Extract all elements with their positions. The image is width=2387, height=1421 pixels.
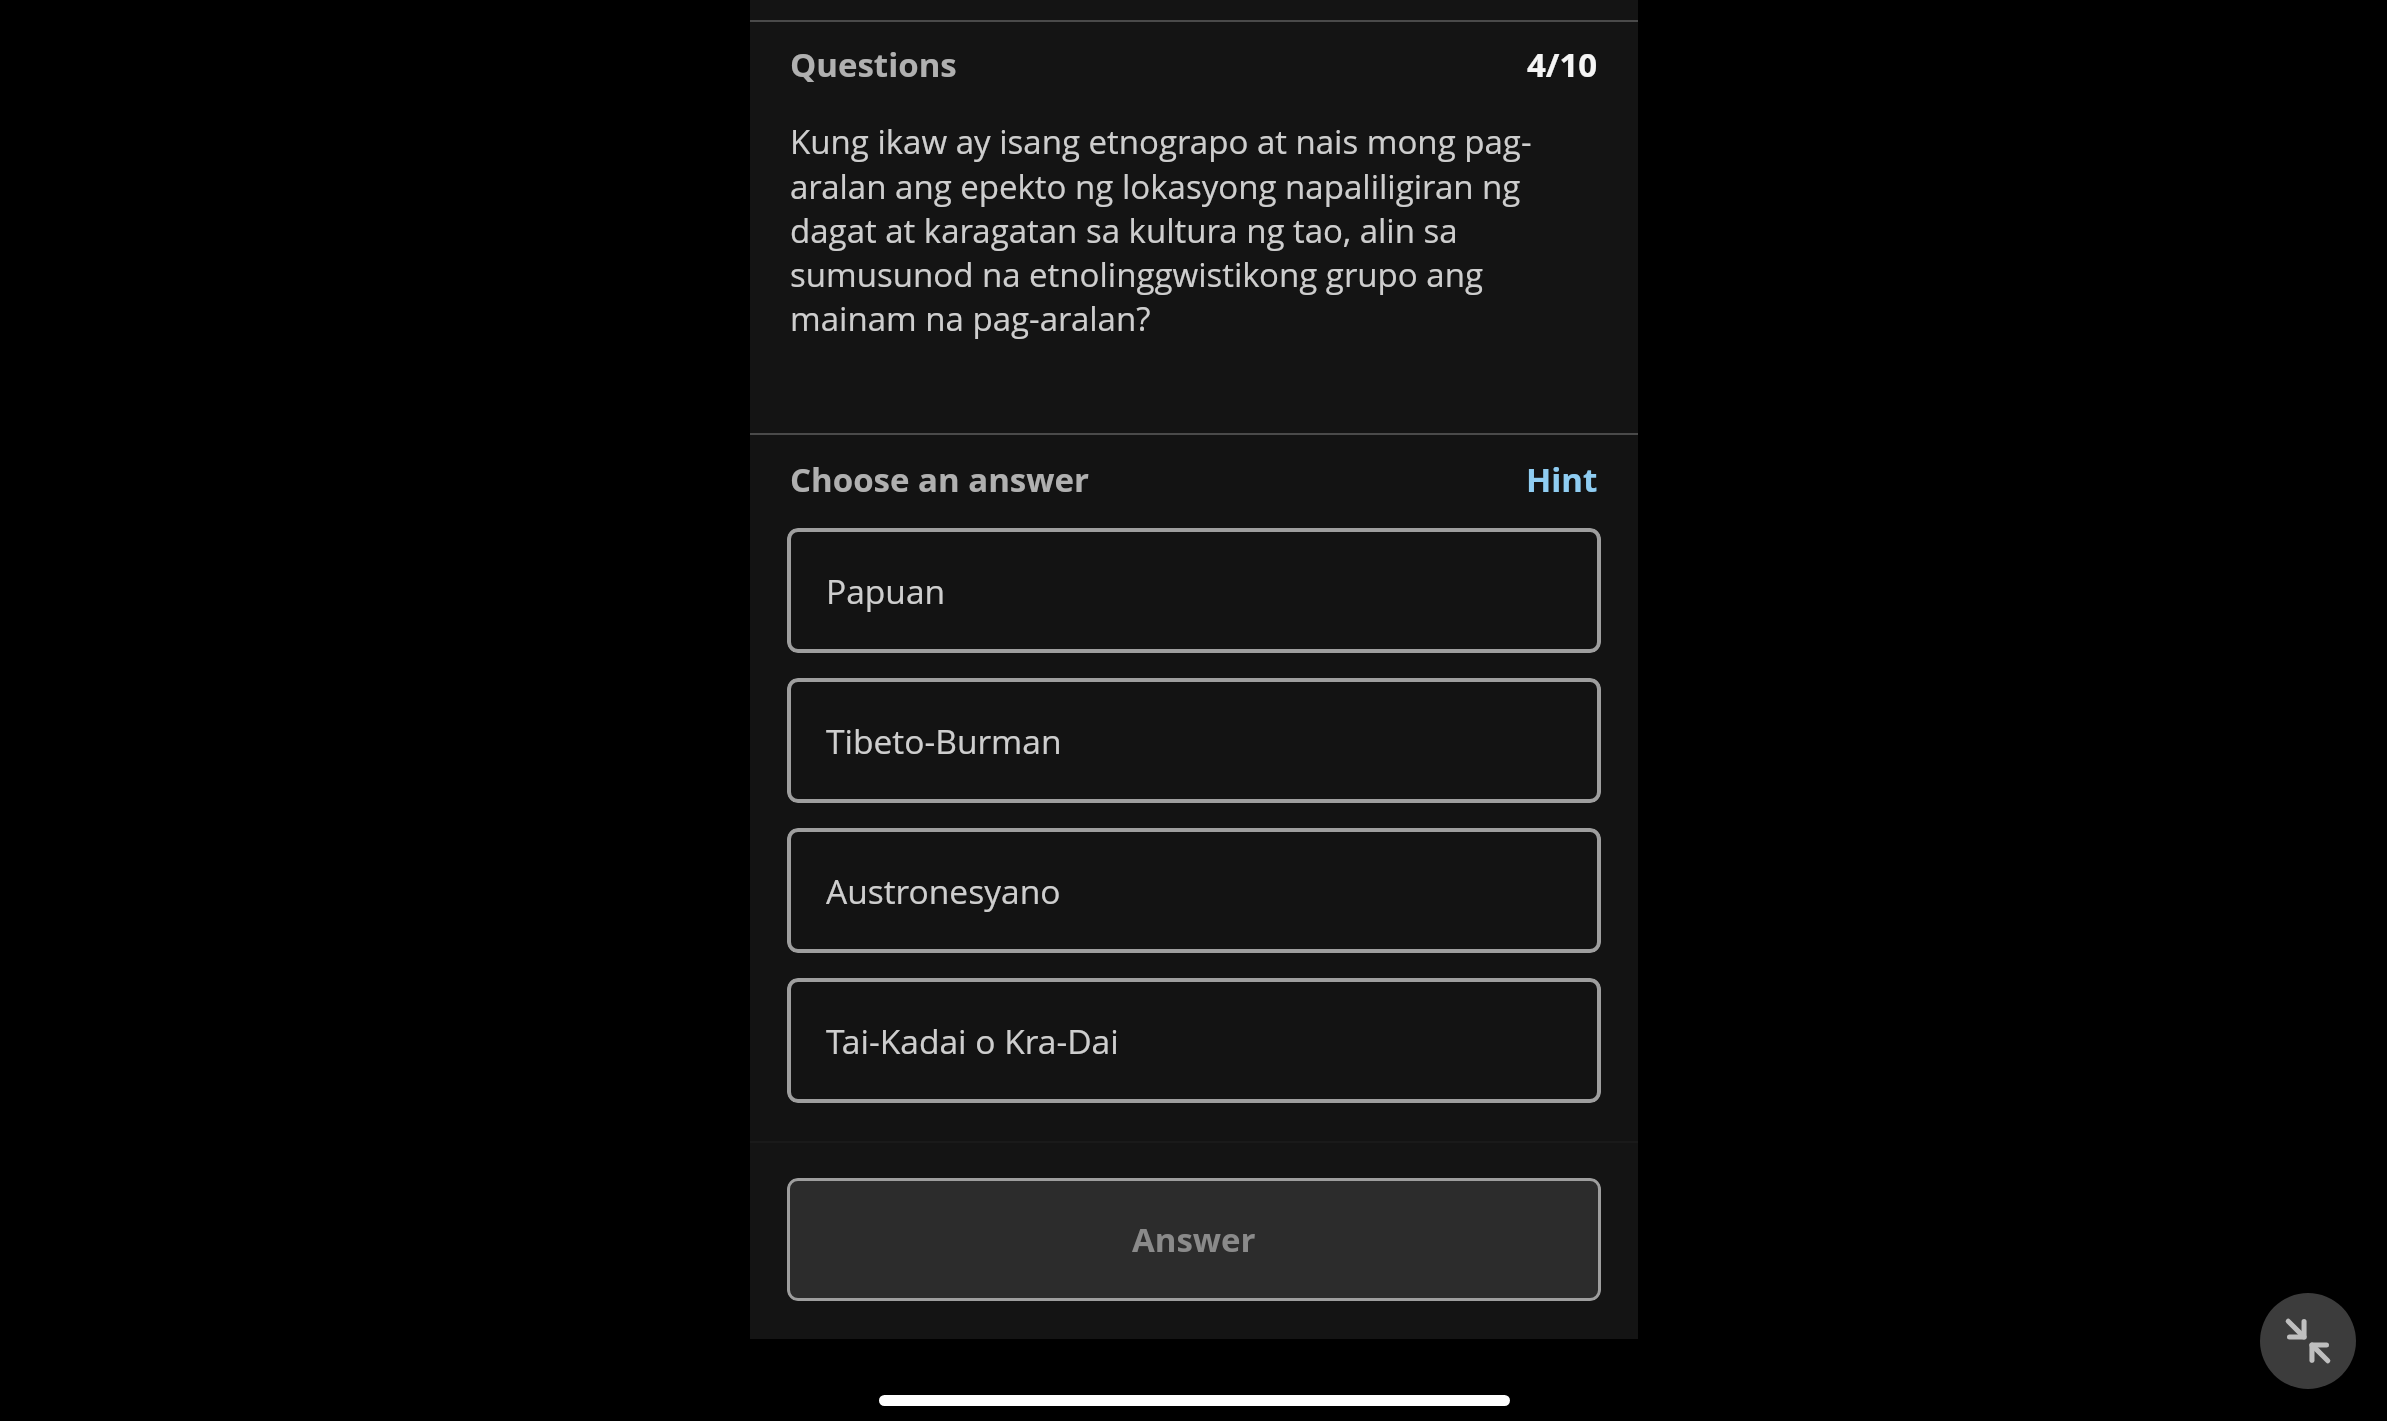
button[interactable]: Exit fullscreen [2260,1293,2356,1389]
staticText: Tai-Kadai o Kra-Dai [826,1018,1119,1064]
staticText: Papuan [826,568,946,614]
button[interactable]: Tai-Kadai o Kra-Dai [787,978,1601,1103]
staticText: Austronesyano [826,868,1061,914]
button[interactable]: Papuan [787,528,1601,653]
button[interactable]: Austronesyano [787,828,1601,953]
button[interactable]: Tibeto-Burman [787,678,1601,803]
staticText: Answer [1132,1217,1256,1262]
button[interactable]: Hint [1526,457,1598,502]
staticText: Choose an answer [790,457,1089,502]
staticText: Tibeto-Burman [826,718,1062,764]
staticText: Questions [790,42,957,87]
staticText: Hint [1526,457,1598,502]
staticText: 4/10 [1527,42,1598,87]
button[interactable]: Answer [787,1178,1601,1301]
staticText: Kung ikaw ay isang etnograpo at nais mon… [790,119,1598,340]
